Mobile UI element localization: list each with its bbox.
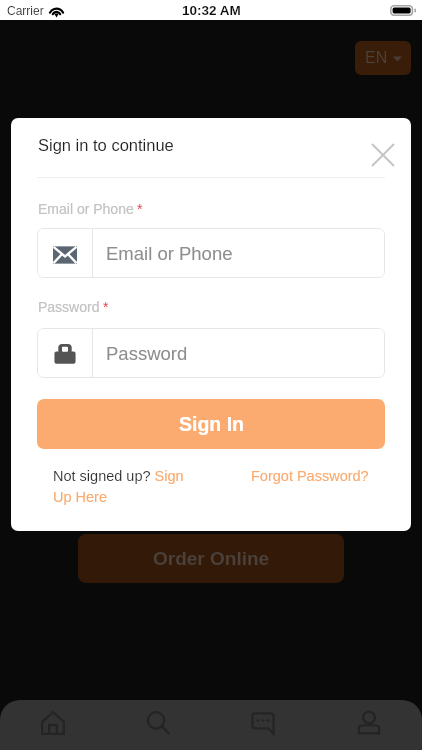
staticText: Sign in to continue xyxy=(38,136,174,154)
button[interactable]: Forgot Password? xyxy=(251,468,369,484)
button[interactable]: Profile xyxy=(316,700,422,750)
staticText: EN xyxy=(365,49,388,67)
button[interactable]: EN xyxy=(355,41,411,75)
staticText: 10:32 AM xyxy=(182,3,241,18)
staticText: Sign In xyxy=(179,413,244,435)
staticText: Carrier xyxy=(7,4,44,17)
staticText: Order Online xyxy=(153,548,270,569)
staticText: Email or Phone xyxy=(106,243,233,264)
button[interactable]: Not signed up? Sign Up Here xyxy=(53,468,189,505)
button[interactable]: Home xyxy=(0,700,105,750)
button[interactable]: Sign In xyxy=(37,399,385,449)
staticText: Email or Phone xyxy=(38,201,134,217)
button[interactable]: Email or Phone xyxy=(37,228,385,278)
staticText: Not signed up? Sign Up Here xyxy=(53,468,189,505)
staticText: * xyxy=(137,201,143,217)
button[interactable]: Close xyxy=(363,135,403,175)
button[interactable]: Order Online xyxy=(78,534,344,583)
staticText: Password xyxy=(38,299,100,315)
staticText: Forgot Password? xyxy=(251,468,369,484)
button[interactable]: Password xyxy=(37,328,385,378)
staticText: * xyxy=(103,299,109,315)
staticText: Password xyxy=(106,343,188,364)
